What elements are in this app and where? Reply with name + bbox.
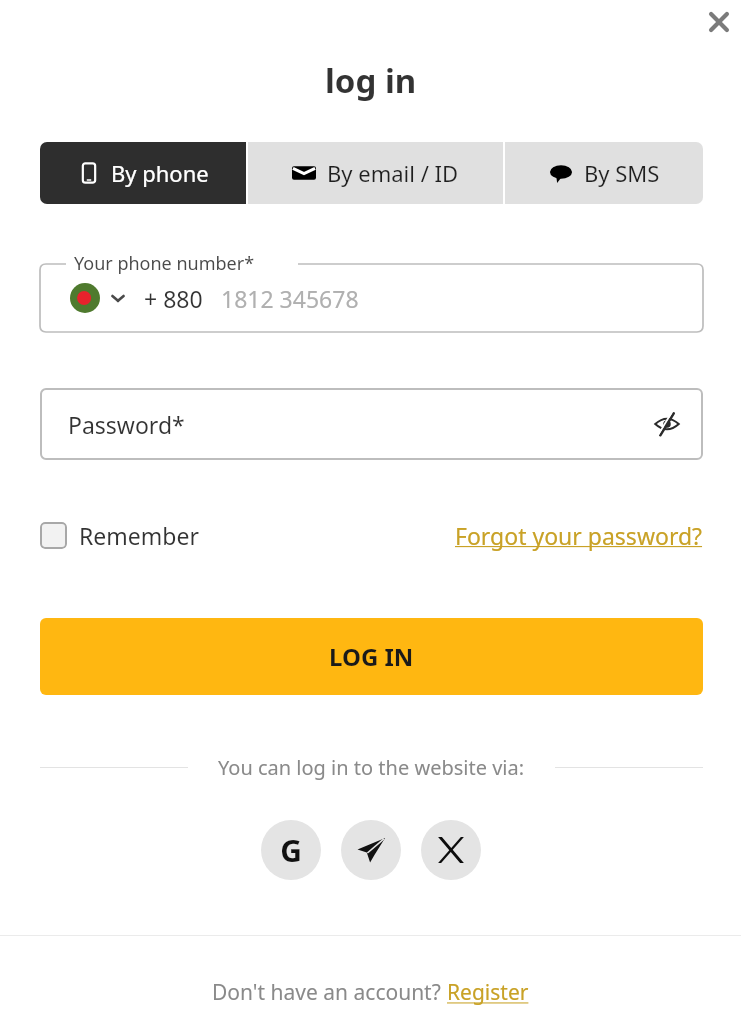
button[interactable]: Log in with X [421,820,481,880]
button[interactable]: Forgot your password? [455,520,703,551]
staticText: Don't have an account? [212,978,447,1007]
staticText: You can log in to the website via: [218,754,525,781]
button[interactable]: Register [447,978,529,1007]
staticText: By phone [111,158,209,188]
staticText: Register [447,978,529,1007]
button[interactable]: Password* [40,388,703,460]
button[interactable]: Show password [649,406,685,442]
staticText: By email / ID [327,158,459,188]
staticText: log in [325,58,417,103]
staticText: By SMS [584,158,660,188]
button[interactable]: By SMS [505,142,703,204]
button[interactable]: By email / ID [248,142,503,204]
button[interactable]: Remember [40,520,199,551]
button[interactable]: Close [697,0,741,44]
staticText: Forgot your password? [455,520,703,551]
staticText: + 880 [144,283,203,314]
staticText: Password* [68,409,185,440]
staticText: Remember [79,520,199,551]
staticText: LOG IN [329,640,414,673]
button[interactable]: Log in with Telegram [341,820,401,880]
button[interactable]: By phone [40,142,246,204]
button[interactable]: Log in with Google [261,820,321,880]
staticText: Your phone number* [74,251,255,276]
staticText: G [280,830,302,871]
button[interactable]: Select country code [68,281,102,315]
staticText: 1812 345678 [221,283,359,314]
button[interactable]: LOG IN [40,618,703,695]
